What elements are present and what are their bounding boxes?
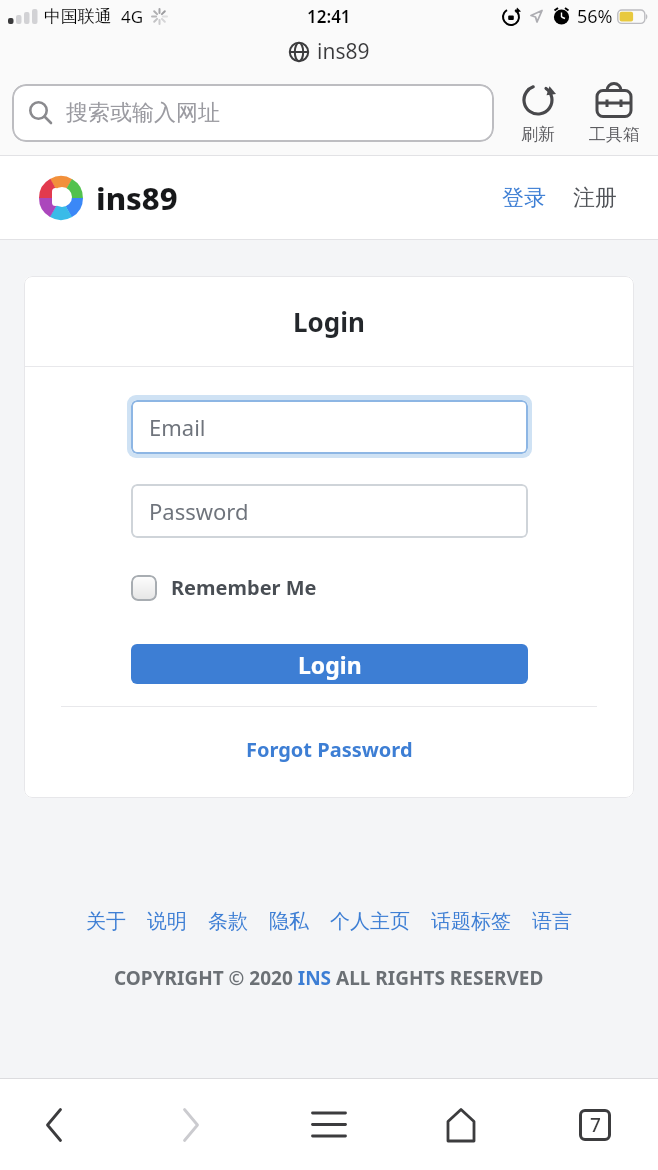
staticText: Email: [149, 412, 206, 442]
button[interactable]: 说明: [147, 909, 187, 934]
button[interactable]: 搜索或输入网址: [12, 84, 494, 142]
staticText: 搜索或输入网址: [66, 99, 220, 127]
button[interactable]: [160, 1079, 220, 1170]
button[interactable]: Login: [131, 644, 528, 684]
button[interactable]: Password: [131, 484, 528, 538]
button[interactable]: 话题标签: [431, 909, 511, 934]
staticText: Login: [298, 649, 362, 680]
staticText: 12:41: [307, 5, 351, 28]
button[interactable]: 刷新: [514, 81, 562, 145]
staticText: 4G: [121, 5, 144, 28]
button[interactable]: Forgot Password: [61, 736, 597, 763]
staticText: 7: [590, 1112, 601, 1138]
button[interactable]: 7: [565, 1079, 625, 1170]
button[interactable]: 工具箱: [580, 81, 648, 145]
button[interactable]: 个人主页: [330, 909, 410, 934]
staticText: ins89: [317, 37, 370, 66]
button[interactable]: 登录: [502, 184, 546, 212]
button[interactable]: [299, 1079, 359, 1170]
staticText: 工具箱: [589, 124, 640, 145]
button[interactable]: 条款: [208, 909, 248, 934]
button[interactable]: 关于: [86, 909, 126, 934]
staticText: Password: [149, 496, 249, 526]
button[interactable]: [25, 1079, 85, 1170]
staticText: COPYRIGHT © 2020 INS ALL RIGHTS RESERVED: [114, 965, 544, 991]
staticText: Remember Me: [171, 574, 317, 601]
button[interactable]: Email: [127, 395, 532, 458]
button[interactable]: 注册: [573, 184, 617, 212]
staticText: ins89: [96, 177, 178, 219]
staticText: Forgot Password: [246, 736, 413, 763]
button[interactable]: 隐私: [269, 909, 309, 934]
staticText: 中国联通: [44, 6, 112, 27]
button[interactable]: 语言: [532, 909, 572, 934]
button[interactable]: Remember Me: [131, 574, 317, 601]
staticText: 刷新: [521, 124, 555, 145]
button[interactable]: [431, 1079, 491, 1170]
staticText: 56%: [577, 4, 613, 29]
staticText: Login: [293, 304, 365, 339]
